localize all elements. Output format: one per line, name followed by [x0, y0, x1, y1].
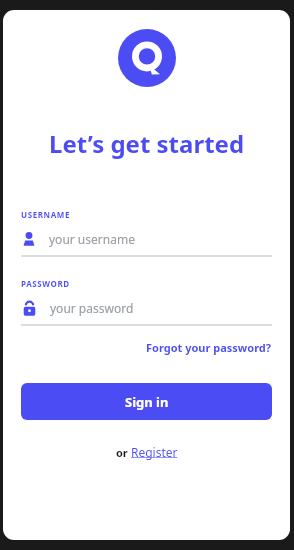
button[interactable]: Forgot your password?	[146, 337, 272, 358]
staticText: Sign in	[125, 393, 169, 411]
staticText: Forgot your password?	[146, 340, 272, 355]
button[interactable]: Sign in	[21, 383, 272, 420]
staticText: your password	[50, 300, 134, 316]
staticText: PASSWORD	[21, 278, 70, 289]
other: Username	[21, 231, 37, 247]
staticText: Register	[131, 444, 178, 460]
button[interactable]: Register	[131, 444, 178, 460]
button[interactable]: Username	[21, 229, 272, 249]
staticText: USERNAME	[21, 209, 71, 220]
other: Password	[21, 300, 38, 317]
staticText: Let’s get started	[49, 127, 245, 160]
staticText: your username	[49, 231, 135, 247]
button[interactable]: Password	[21, 298, 272, 318]
staticText: or	[116, 445, 131, 460]
